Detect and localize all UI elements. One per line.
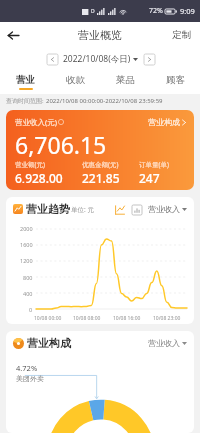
staticText: 10/08 08:00 <box>73 315 101 322</box>
staticText: 美团外卖 <box>16 374 44 383</box>
button[interactable]: Line chart <box>113 203 126 216</box>
staticText: 221.85 <box>82 170 120 183</box>
staticText: 0 <box>29 306 33 313</box>
staticText: 247 <box>139 170 160 183</box>
button[interactable]: 顾客 <box>150 70 200 94</box>
staticText: 1200 <box>20 257 33 264</box>
staticText: 10/08 00:00 <box>34 315 62 322</box>
staticText: 4.72% <box>16 363 38 373</box>
button[interactable]: Previous day <box>46 53 58 65</box>
staticText: 6,928.00 <box>15 170 63 183</box>
staticText: 顾客 <box>166 74 185 86</box>
staticText: 订单量(单) <box>139 160 169 169</box>
button[interactable]: 营业 <box>0 70 50 94</box>
staticText: 2000 <box>20 225 33 232</box>
button[interactable]: 营业收入 <box>148 204 187 214</box>
staticText: 菜品 <box>116 74 135 86</box>
staticText: 10/08 23:00 <box>153 315 181 322</box>
staticText: 营业趋势 <box>26 202 70 216</box>
staticText: 优惠金额(元) <box>82 160 119 169</box>
staticText: 营业收入 <box>148 204 180 214</box>
button[interactable]: 营业收入(元) <box>6 110 194 190</box>
staticText: 6,706.15 <box>15 129 107 160</box>
staticText: 10/08 16:00 <box>113 315 141 322</box>
button[interactable]: Bar chart <box>130 203 143 216</box>
staticText: 定制 <box>172 29 191 41</box>
staticText: 收款 <box>66 74 85 86</box>
staticText: 800 <box>23 274 33 281</box>
button[interactable]: 2022/10/08(今日) <box>63 53 138 65</box>
staticText: 72% <box>149 6 163 16</box>
staticText: 营业收入 <box>148 338 180 348</box>
staticText: 2022/10/08(今日) <box>63 53 131 65</box>
staticText: 9:09 <box>180 6 195 16</box>
staticText: 400 <box>23 290 33 297</box>
staticText: 营业构成 <box>148 117 180 127</box>
staticText: D <box>91 8 95 15</box>
staticText: 1600 <box>20 241 33 248</box>
staticText: 2022/10/08 00:00:00-2022/10/08 23:59:59 <box>46 97 163 105</box>
staticText: 查询时间范围: <box>6 97 44 105</box>
button[interactable]: 营业构成 <box>148 117 186 127</box>
button[interactable]: 定制 <box>163 22 200 48</box>
staticText: 营业 <box>16 74 35 86</box>
staticText: 单位: 元 <box>71 205 94 214</box>
staticText: 营业概览 <box>78 28 122 42</box>
button[interactable]: Back <box>0 22 26 48</box>
button[interactable]: 营业收入 <box>148 338 187 348</box>
button[interactable]: 菜品 <box>100 70 150 94</box>
staticText: 营业额(元) <box>15 160 45 169</box>
button[interactable]: 收款 <box>50 70 100 94</box>
staticText: 营业构成 <box>27 336 71 350</box>
staticText: 营业收入(元) <box>15 117 57 127</box>
button[interactable]: Next day <box>143 53 155 65</box>
